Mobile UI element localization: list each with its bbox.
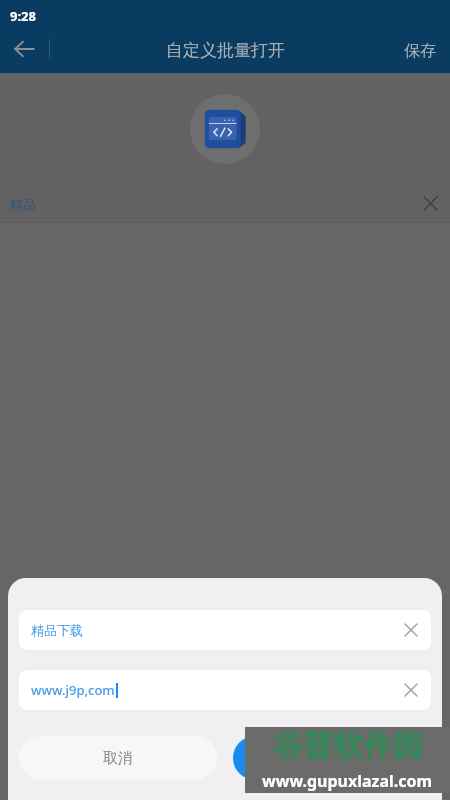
staticText: 9:28 xyxy=(10,7,36,25)
button[interactable]: 确定 xyxy=(233,736,431,780)
button[interactable]: Back xyxy=(0,25,48,73)
button[interactable]: 取消 xyxy=(19,736,217,780)
staticText: www.j9p,com xyxy=(31,681,115,699)
button[interactable]: 精品下载 xyxy=(19,610,431,650)
staticText: 确定 xyxy=(317,749,347,768)
staticText: 谷普软件园 xyxy=(273,727,423,765)
staticText: 精品 xyxy=(10,196,36,212)
button[interactable]: Clear text xyxy=(391,670,431,710)
button[interactable]: 精品 xyxy=(0,185,450,222)
staticText: 精品下载 xyxy=(31,622,83,638)
staticText: 保存 xyxy=(404,41,436,61)
button[interactable]: Remove xyxy=(410,185,450,222)
staticText: www.gupuxlazal.com xyxy=(262,770,433,792)
button[interactable]: Clear text xyxy=(391,610,431,650)
staticText: 自定义批量打开 xyxy=(166,40,285,61)
button[interactable]: 保存 xyxy=(390,28,450,73)
button[interactable]: www.j9p,com xyxy=(19,670,431,710)
staticText: 取消 xyxy=(103,749,133,768)
